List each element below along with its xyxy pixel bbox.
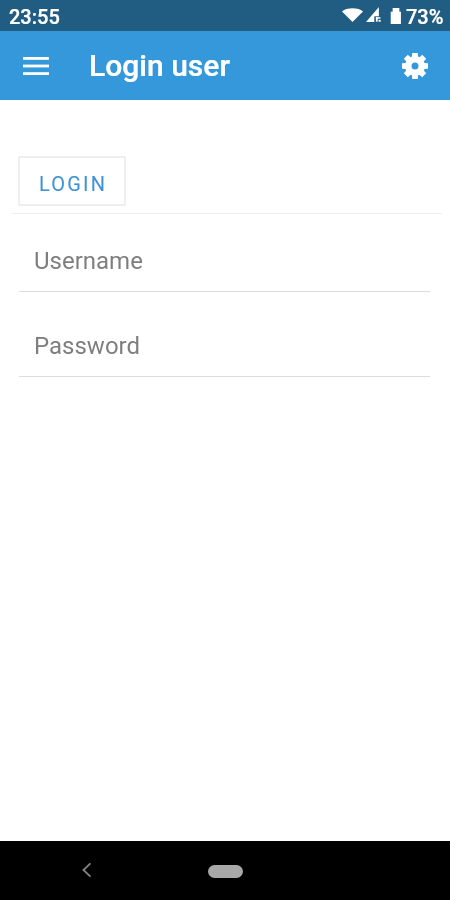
staticText: Username <box>34 247 143 275</box>
button[interactable]: Settings <box>391 42 439 90</box>
staticText: 23:55 <box>9 5 60 28</box>
button[interactable]: Username <box>19 247 430 292</box>
button[interactable]: Open navigation drawer <box>12 42 60 90</box>
staticText: 73% <box>406 5 444 28</box>
staticText: Login user <box>89 48 230 83</box>
button[interactable]: Home <box>190 851 260 891</box>
staticText: LOGIN <box>39 172 108 195</box>
button[interactable]: LOGIN <box>19 157 125 205</box>
button[interactable]: Back <box>65 846 107 894</box>
button[interactable]: Password <box>19 332 430 377</box>
staticText: Password <box>34 332 141 360</box>
